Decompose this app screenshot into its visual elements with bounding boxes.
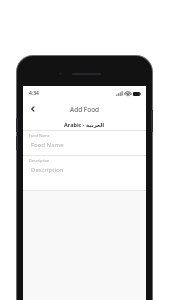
button[interactable]: Arabic - العربية — [23, 118, 146, 130]
button[interactable]: Description — [23, 156, 146, 190]
staticText: Food Name — [29, 133, 50, 138]
staticText: Description — [29, 158, 50, 163]
staticText: Description — [31, 166, 64, 174]
staticText: Arabic - العربية — [64, 121, 105, 128]
button[interactable]: Back — [23, 100, 43, 118]
staticText: Food Name — [31, 141, 64, 149]
button[interactable]: Food Name — [23, 131, 146, 155]
staticText: Add Food — [70, 105, 100, 114]
staticText: 4:34 — [29, 90, 39, 97]
